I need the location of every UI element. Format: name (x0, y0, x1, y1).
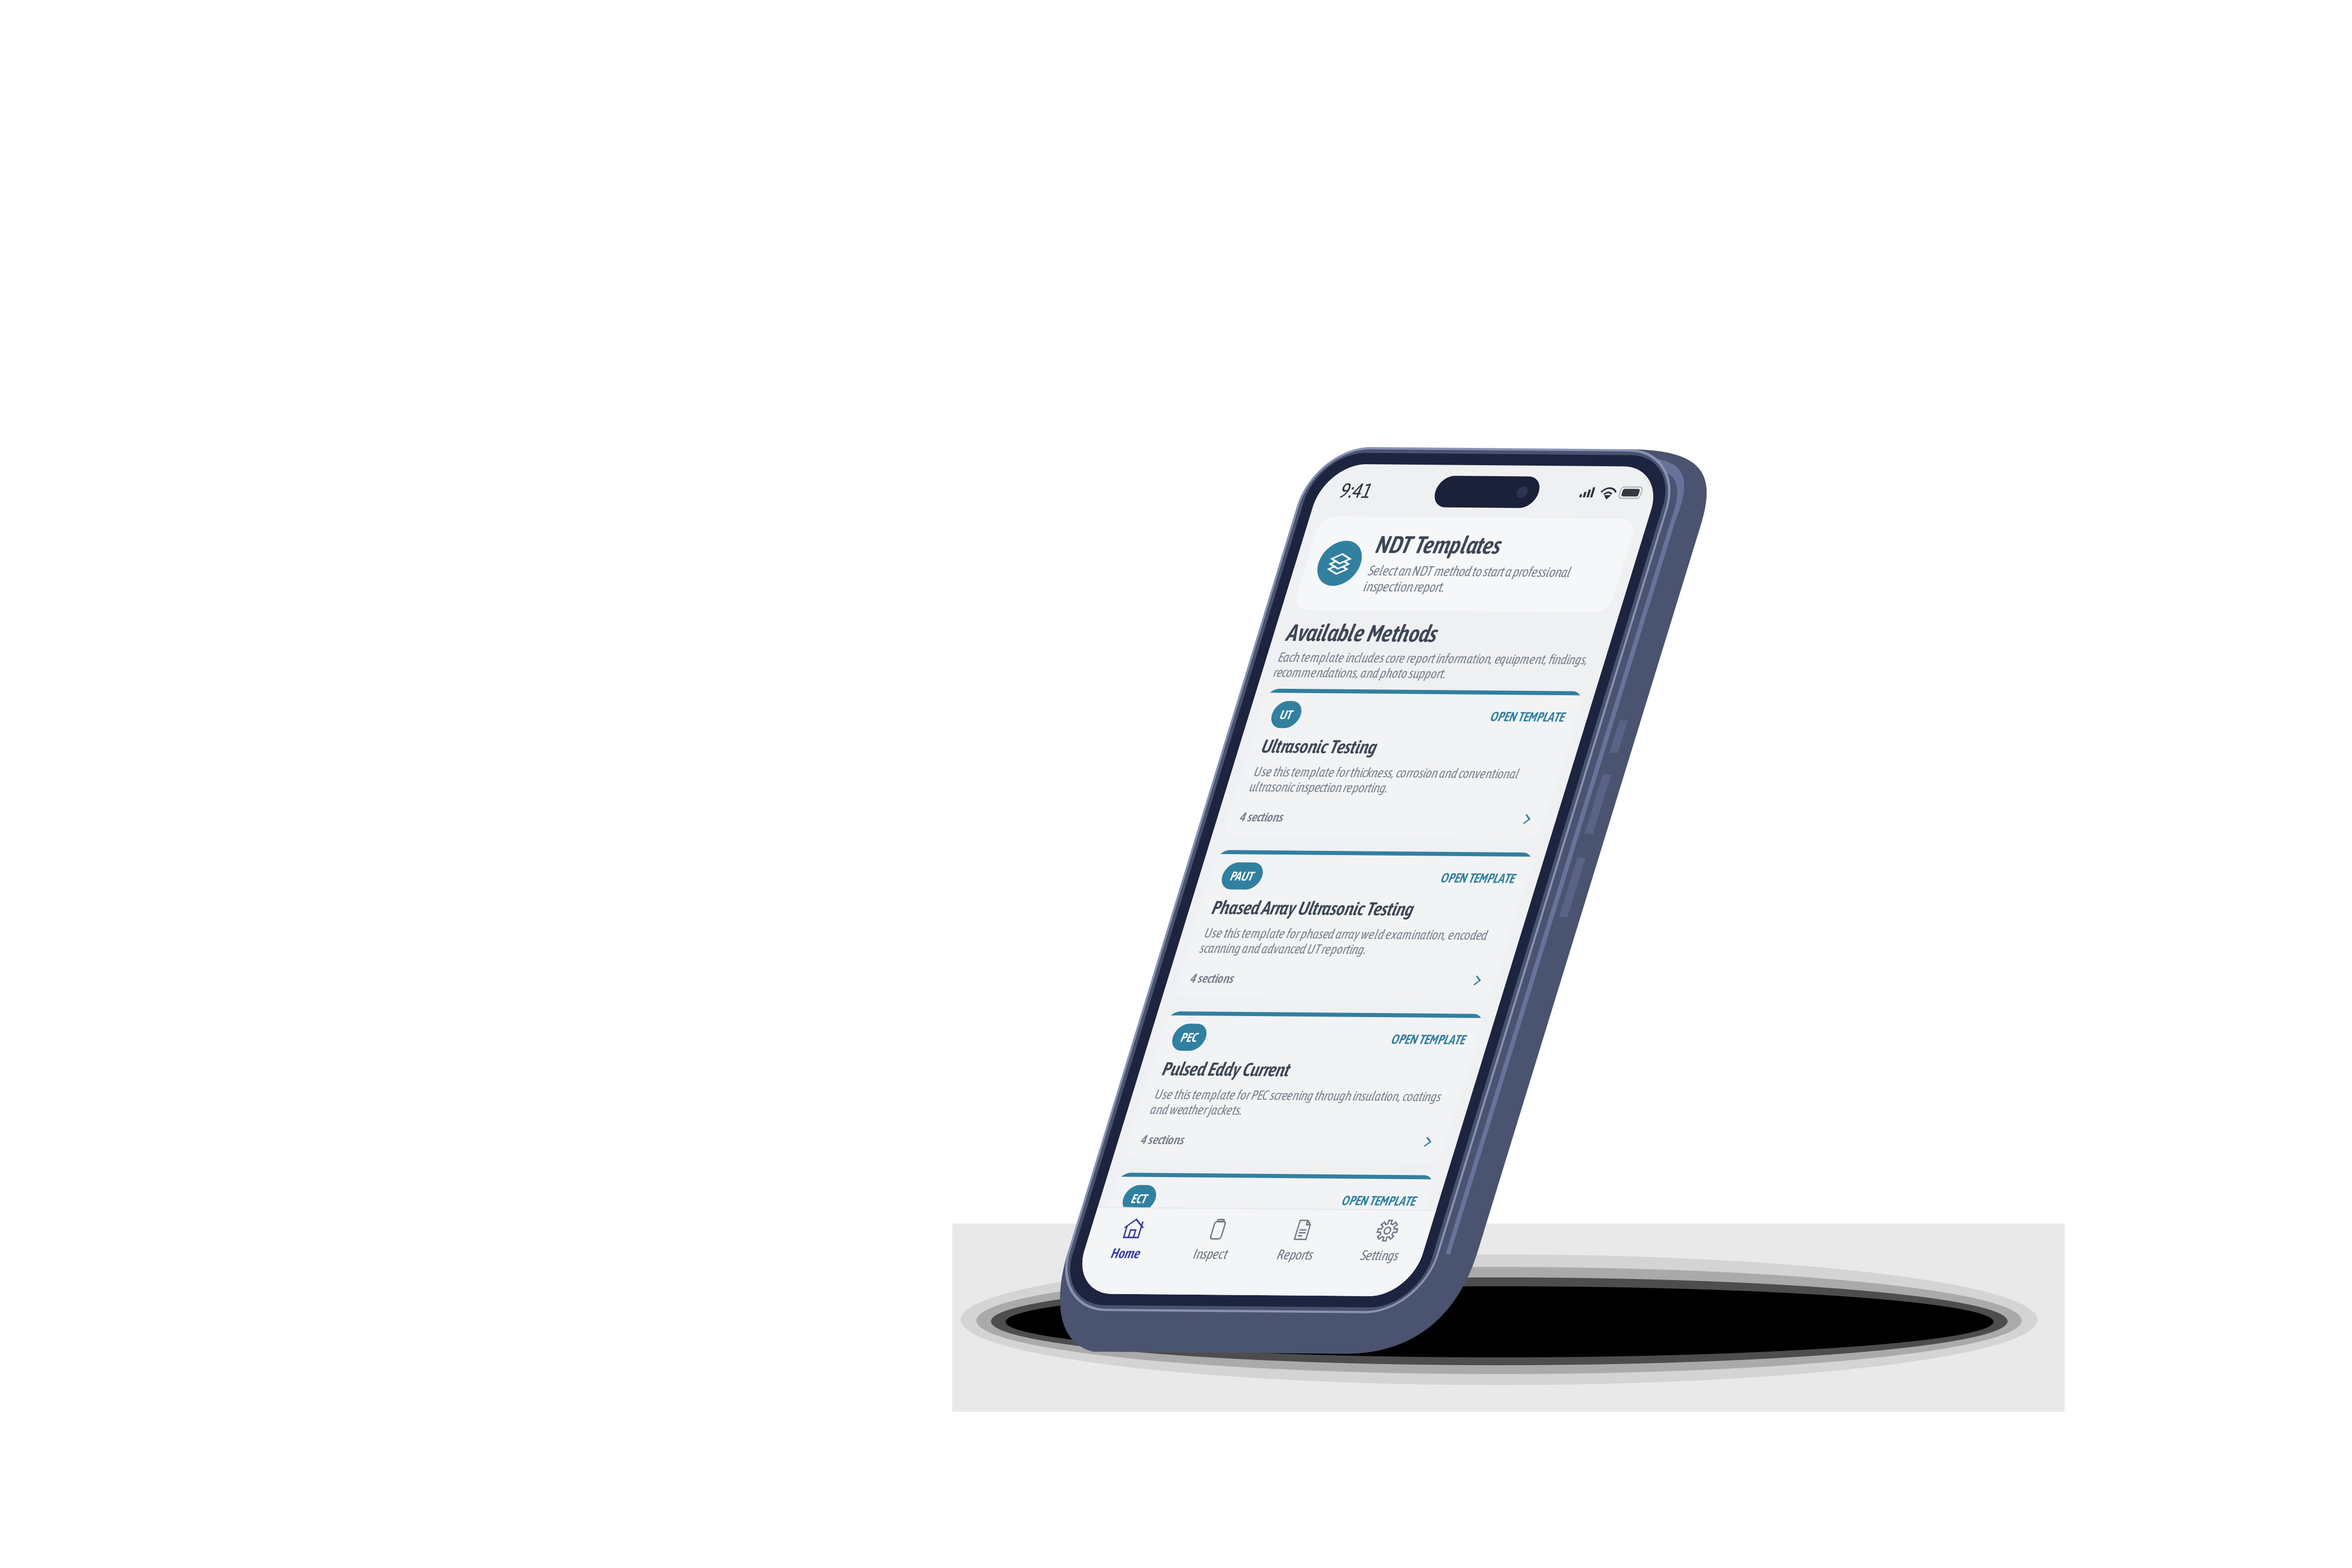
staticText: 9:41 (1339, 465, 1359, 479)
staticText: 4 sections (1339, 937, 1366, 946)
staticText: Use this template for thickness, corrosi… (1339, 630, 1503, 648)
button[interactable]: Inspect (1377, 888, 1430, 918)
staticText: Use this template for phased array weld … (1339, 724, 1514, 741)
staticText: Each template includes core report infor… (1332, 564, 1524, 582)
staticText: PEC (1344, 784, 1354, 793)
staticText: OPEN TEMPLATE (1475, 691, 1520, 700)
button[interactable]: ECT (1332, 867, 1527, 953)
staticText: Home (1342, 909, 1360, 918)
staticText: Use this template for surface breaking c… (1339, 911, 1513, 928)
staticText: OPEN TEMPLATE (1475, 878, 1520, 887)
staticText: Eddy Current Testing (1339, 894, 1420, 907)
staticText: 4 sections (1339, 844, 1366, 852)
staticText: Available Methods (1333, 546, 1426, 562)
staticText: Ultrasonic Testing (1339, 614, 1410, 626)
button[interactable]: Settings (1482, 888, 1534, 918)
staticText: PAUT (1344, 691, 1359, 699)
button[interactable]: UT (1332, 587, 1527, 672)
staticText: Inspect (1393, 909, 1414, 918)
button[interactable]: Home (1325, 888, 1377, 918)
button[interactable]: PEC (1332, 774, 1527, 859)
button[interactable]: PAUT (1332, 680, 1527, 766)
staticText: 4 sections (1339, 657, 1366, 665)
staticText: 4 sections (1339, 750, 1366, 759)
staticText: NDT Templates (1372, 495, 1448, 511)
